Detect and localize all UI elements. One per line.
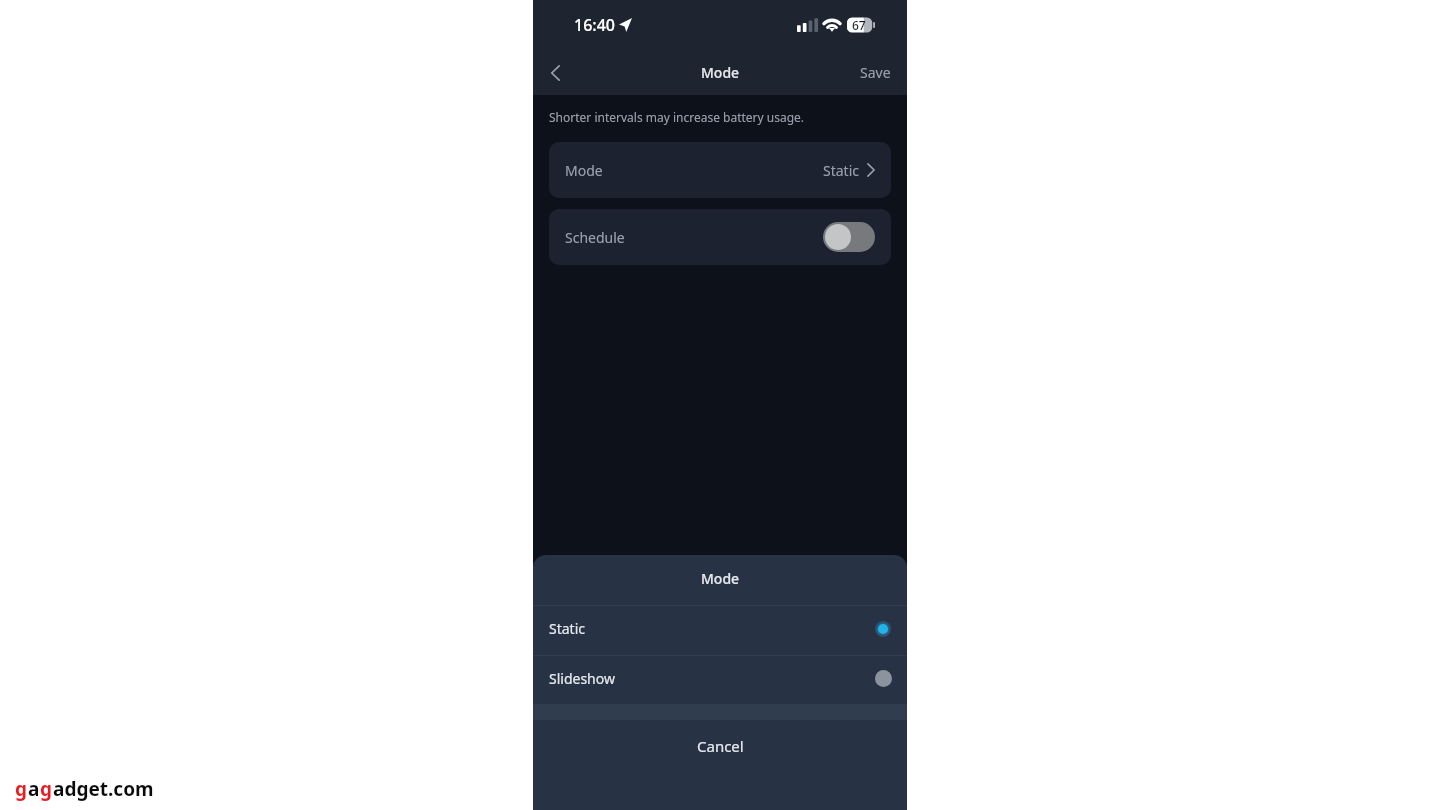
button[interactable]: Mode [549, 142, 891, 198]
staticText: a [28, 776, 40, 802]
button[interactable]: Cancel [533, 720, 907, 775]
staticText: Mode [701, 63, 740, 82]
button[interactable]: Back [535, 53, 575, 93]
button[interactable]: Static [533, 606, 907, 655]
staticText: g [15, 776, 28, 802]
staticText: Schedule [565, 228, 625, 247]
staticText: Static [549, 619, 585, 638]
button[interactable]: Schedule [549, 209, 891, 265]
staticText: adget.com [53, 776, 154, 802]
button[interactable]: Schedule [823, 222, 875, 252]
staticText: 67 [852, 17, 866, 33]
staticText: Mode [701, 569, 740, 588]
staticText: Save [860, 63, 891, 82]
staticText: Slideshow [549, 669, 615, 688]
button[interactable]: Slideshow [533, 656, 907, 704]
staticText: 16:40 [574, 14, 615, 36]
staticText: Cancel [697, 736, 744, 756]
button[interactable]: Save [844, 50, 907, 95]
staticText: Mode [565, 161, 603, 180]
staticText: g [40, 776, 53, 802]
staticText: Shorter intervals may increase battery u… [549, 109, 805, 125]
staticText: Static [823, 161, 859, 180]
